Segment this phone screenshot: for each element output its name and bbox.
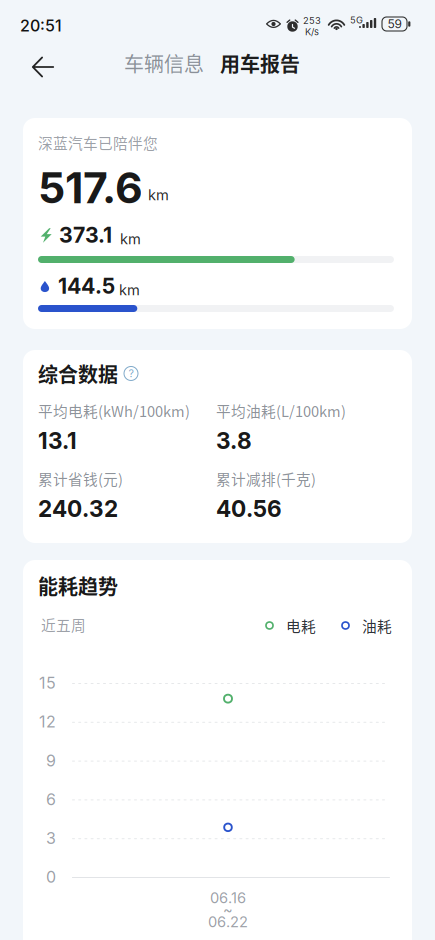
staticText: 深蓝汽车已陪伴您 [38, 132, 158, 153]
staticText: 能耗趋势 [38, 571, 118, 600]
staticText: 5G [350, 14, 363, 26]
staticText: 用车报告 [220, 48, 300, 77]
button[interactable]: 说明 [122, 364, 140, 382]
staticText: km [119, 281, 140, 299]
button[interactable]: 用车报告 [214, 42, 306, 84]
staticText: 06.16 [210, 889, 246, 907]
staticText: 累计省钱(元) [38, 468, 123, 489]
staticText: 平均油耗(L/100km) [216, 400, 346, 421]
staticText: 综合数据 [38, 359, 118, 388]
staticText: 电耗 [286, 615, 316, 636]
staticText: 15 [39, 673, 56, 693]
staticText: 累计减排(千克) [216, 468, 316, 489]
staticText: 0 [46, 867, 56, 887]
staticText: 20:51 [20, 16, 62, 35]
button[interactable]: 返回 [20, 44, 66, 90]
staticText: K/s [305, 26, 319, 38]
staticText: 12 [39, 712, 56, 731]
staticText: ? [128, 367, 133, 380]
staticText: 373.1 [59, 222, 112, 248]
staticText: 近五周 [41, 614, 86, 635]
staticText: 9 [46, 751, 56, 770]
staticText: 253 [303, 15, 321, 26]
staticText: 144.5 [58, 273, 115, 299]
staticText: 40.56 [216, 495, 282, 522]
staticText: 车辆信息 [124, 48, 204, 77]
staticText: 59 [387, 17, 401, 31]
staticText: 6 [46, 790, 56, 809]
staticText: 517.6 [38, 162, 143, 214]
staticText: 240.32 [38, 495, 118, 522]
staticText: 油耗 [362, 615, 392, 636]
button[interactable]: 车辆信息 [118, 42, 210, 84]
staticText: 06.22 [208, 913, 248, 931]
staticText: 3.8 [216, 427, 252, 454]
staticText: km [148, 186, 169, 204]
staticText: km [120, 230, 141, 248]
staticText: ~ [223, 901, 233, 919]
staticText: 平均电耗(kWh/100km) [38, 400, 190, 421]
staticText: 13.1 [38, 427, 77, 454]
staticText: 3 [46, 828, 56, 848]
